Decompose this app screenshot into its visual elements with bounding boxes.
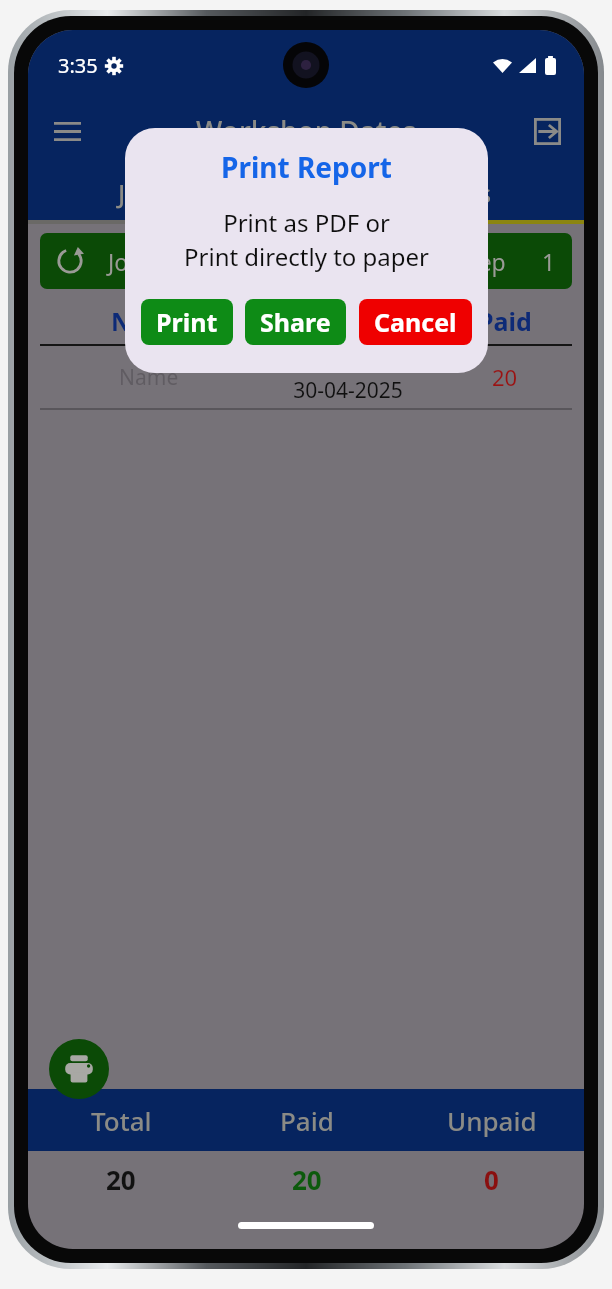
staticText: Print as PDF or Print directly to paper <box>184 206 429 274</box>
button[interactable]: Name <box>28 346 584 410</box>
staticText: Wed 30-04-2025 <box>293 350 403 404</box>
staticText: Sep <box>466 246 506 277</box>
staticText: Journals <box>108 246 196 277</box>
staticText: Date <box>318 304 378 338</box>
staticText: 0 <box>484 1162 499 1197</box>
staticText: 20 <box>492 362 518 392</box>
staticText: Paid <box>478 304 532 338</box>
button[interactable]: Paid <box>214 1089 399 1151</box>
staticText: Print <box>156 305 218 339</box>
button[interactable]: Reports <box>306 162 584 224</box>
staticText: Paid <box>280 1103 334 1138</box>
button[interactable]: Logout <box>524 108 570 154</box>
button[interactable]: Print report <box>49 1039 109 1099</box>
button[interactable]: Share <box>245 299 346 345</box>
staticText: Reports <box>398 176 492 210</box>
staticText: 3:35 <box>58 52 98 79</box>
staticText: 20 <box>106 1162 136 1197</box>
button[interactable]: Total <box>28 1089 214 1151</box>
staticText: Cancel <box>374 305 457 339</box>
button[interactable]: Menu <box>44 108 90 154</box>
button[interactable]: Print <box>141 299 233 345</box>
button[interactable]: Journals <box>28 162 306 224</box>
staticText: Name <box>111 304 186 338</box>
staticText: Print Report <box>221 148 392 186</box>
staticText: Workshop Dates <box>196 112 417 150</box>
staticText: 20 <box>292 1162 322 1197</box>
button[interactable]: Unpaid <box>399 1089 584 1151</box>
staticText: 1 <box>542 246 556 277</box>
staticText: Name <box>119 363 179 392</box>
staticText: Unpaid <box>447 1103 537 1138</box>
staticText: Journals <box>118 176 216 210</box>
staticText: Share <box>260 305 331 339</box>
button[interactable]: Cancel <box>359 299 472 345</box>
button[interactable]: Journals <box>40 233 572 289</box>
staticText: Total <box>91 1103 152 1138</box>
